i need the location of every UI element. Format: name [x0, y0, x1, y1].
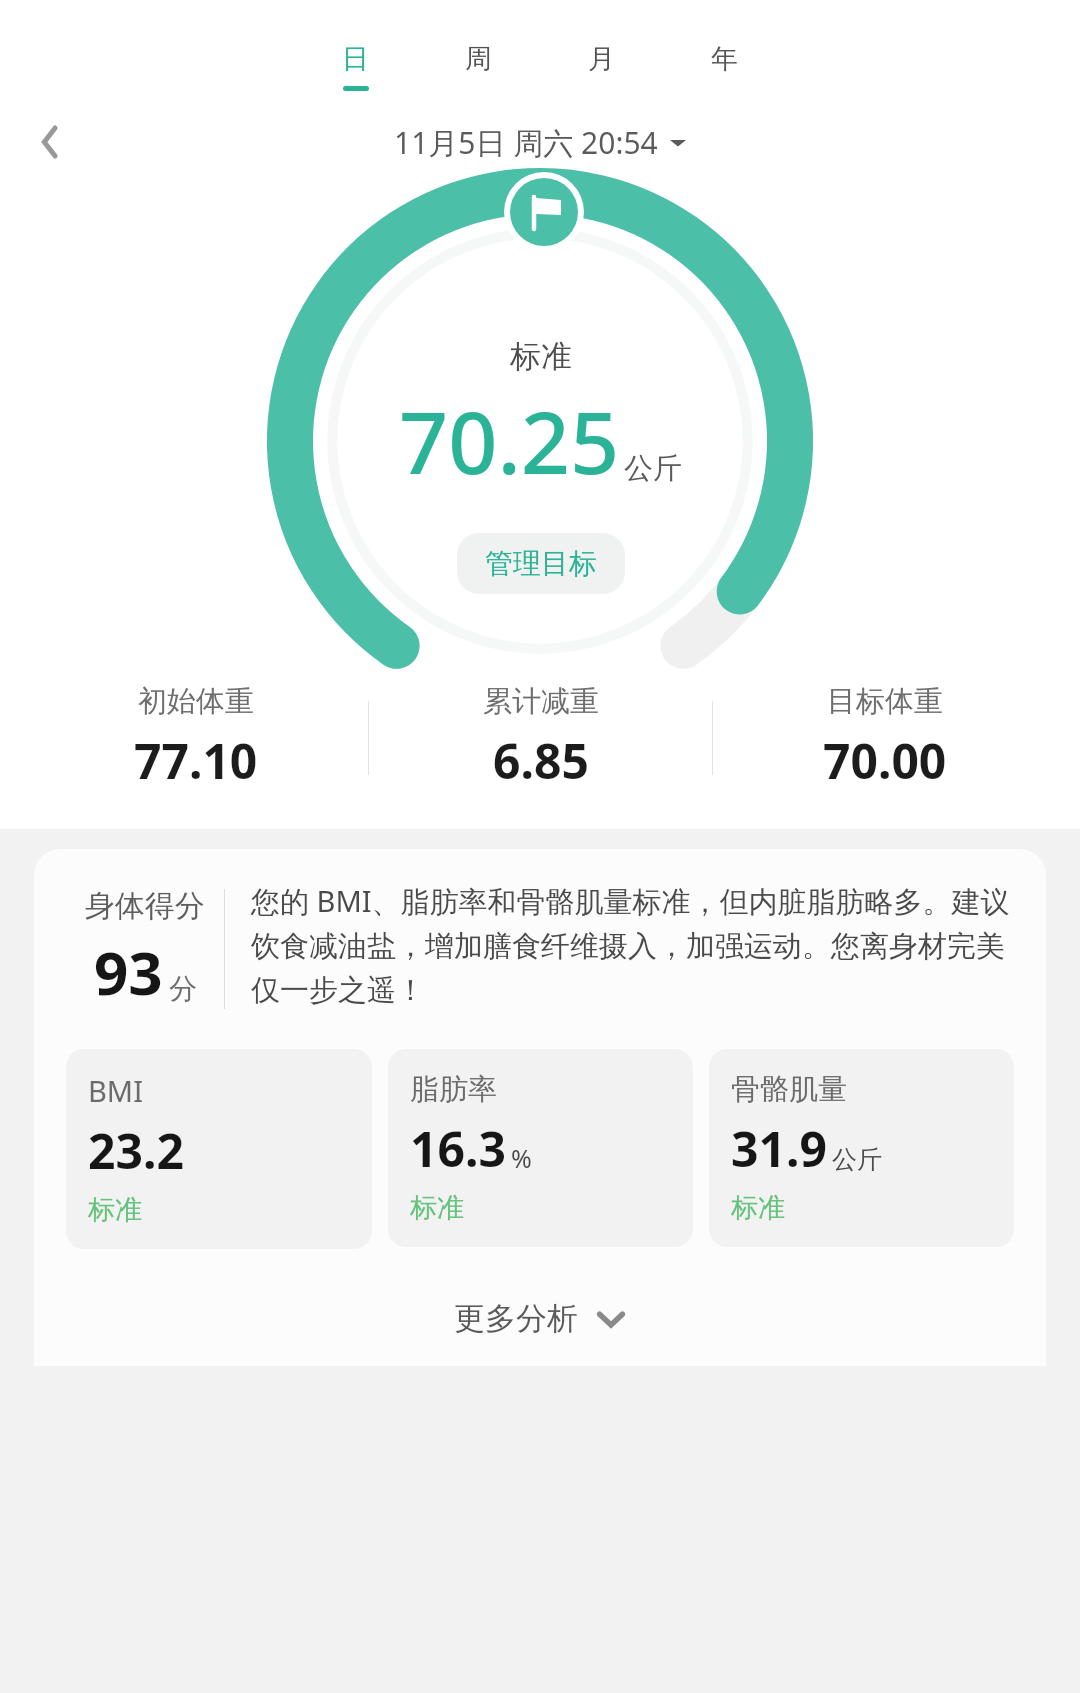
- staticText: 周: [465, 42, 492, 76]
- button[interactable]: 日: [336, 40, 375, 93]
- staticText: 公斤: [832, 1144, 882, 1175]
- staticText: 公斤: [624, 450, 682, 487]
- staticText: 目标体重: [827, 683, 943, 720]
- staticText: 标准: [510, 337, 572, 376]
- button[interactable]: BMI: [66, 1049, 372, 1249]
- staticText: 年: [711, 42, 738, 76]
- button[interactable]: 周: [459, 40, 498, 93]
- staticText: 93: [94, 931, 163, 1013]
- button[interactable]: 11月5日 周六 20:54: [394, 122, 686, 163]
- button[interactable]: 脂肪率: [388, 1049, 693, 1247]
- staticText: 更多分析: [454, 1299, 578, 1338]
- button[interactable]: 月: [582, 40, 621, 93]
- staticText: 骨骼肌量: [731, 1071, 847, 1108]
- staticText: 分: [169, 971, 197, 1006]
- staticText: 6.85: [493, 728, 589, 793]
- button[interactable]: 目标体重: [713, 679, 1056, 797]
- staticText: 您的 BMI、脂肪率和骨骼肌量标准，但内脏脂肪略多。建议饮食减油盐，增加膳食纤维…: [251, 881, 1014, 1008]
- button[interactable]: 累计减重: [369, 679, 712, 797]
- button[interactable]: 骨骼肌量: [709, 1049, 1014, 1247]
- staticText: 23.2: [88, 1118, 184, 1183]
- staticText: 标准: [410, 1191, 464, 1225]
- button[interactable]: 管理目标: [457, 533, 625, 594]
- button[interactable]: 年: [705, 40, 744, 93]
- button[interactable]: 初始体重: [24, 679, 368, 797]
- staticText: 70.00: [823, 728, 947, 793]
- staticText: 初始体重: [138, 683, 254, 720]
- staticText: 77.10: [134, 728, 258, 793]
- button[interactable]: Back: [20, 115, 74, 169]
- staticText: 标准: [731, 1191, 785, 1225]
- staticText: 31.9: [731, 1116, 827, 1181]
- staticText: 11月5日 周六 20:54: [394, 122, 658, 163]
- staticText: 管理目标: [485, 546, 597, 581]
- staticText: %: [511, 1141, 532, 1175]
- staticText: 70.25: [399, 382, 620, 499]
- staticText: BMI: [88, 1071, 143, 1110]
- staticText: 16.3: [410, 1116, 506, 1181]
- staticText: 累计减重: [483, 683, 599, 720]
- staticText: 脂肪率: [410, 1071, 497, 1108]
- button[interactable]: 更多分析: [66, 1289, 1014, 1348]
- staticText: 身体得分: [85, 887, 205, 925]
- staticText: 标准: [88, 1193, 142, 1227]
- staticText: 日: [342, 42, 369, 76]
- staticText: 月: [588, 42, 615, 76]
